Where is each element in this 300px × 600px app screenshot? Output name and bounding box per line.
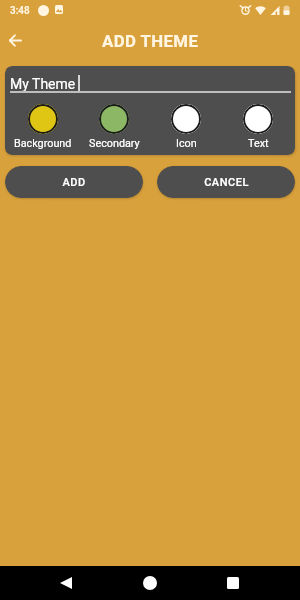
staticText: ADD: [62, 176, 86, 189]
staticText: Background: [14, 137, 72, 150]
staticText: Text: [248, 137, 269, 150]
button[interactable]: CANCEL: [157, 166, 295, 198]
staticText: 3:48: [10, 5, 30, 17]
button[interactable]: Home: [130, 566, 170, 600]
button[interactable]: Back: [46, 566, 86, 600]
button[interactable]: Back: [0, 25, 30, 55]
staticText: Icon: [176, 137, 197, 150]
staticText: Secondary: [89, 137, 140, 150]
staticText: ADD THEME: [102, 31, 199, 51]
button[interactable]: Secondary: [78, 104, 150, 150]
staticText: CANCEL: [204, 176, 249, 189]
staticText: My Theme: [10, 76, 76, 92]
button[interactable]: ADD: [5, 166, 143, 198]
button[interactable]: Background: [7, 104, 79, 150]
button[interactable]: Recent apps: [213, 566, 253, 600]
button[interactable]: Text: [222, 104, 294, 150]
button[interactable]: Icon: [150, 104, 222, 150]
